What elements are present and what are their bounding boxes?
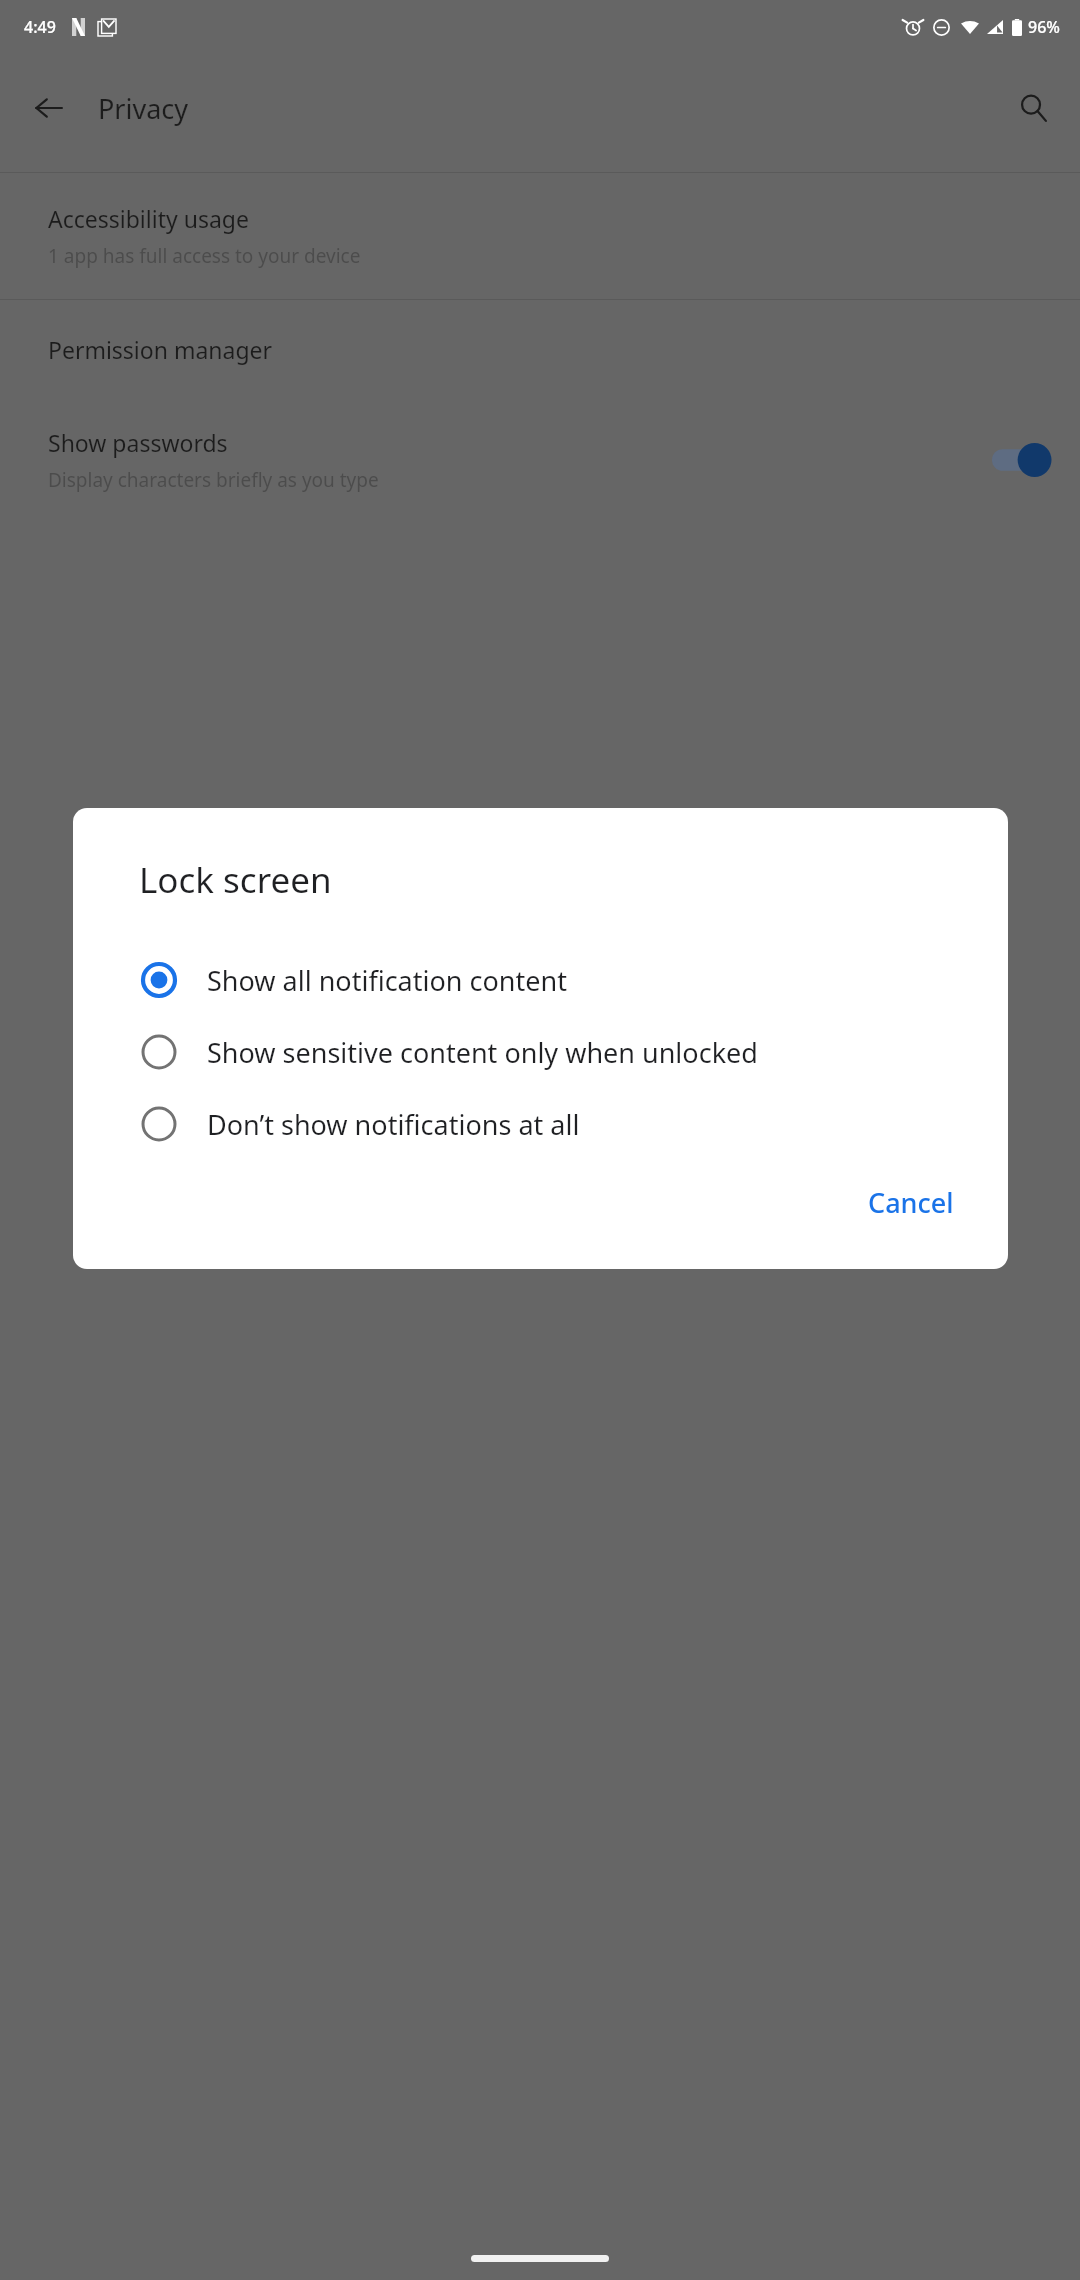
button[interactable]: Search (1002, 77, 1064, 139)
staticText: Display characters briefly as you type (48, 467, 379, 493)
staticText: Permission manager (48, 334, 273, 365)
staticText: Show all notification content (207, 962, 567, 999)
staticText: Show sensitive content only when unlocke… (207, 1034, 758, 1071)
staticText: Cancel (868, 1184, 954, 1221)
button[interactable]: Don’t show notifications at all (73, 1088, 1008, 1160)
button[interactable]: Show passwords (0, 399, 1080, 521)
button[interactable]: Show passwords (992, 442, 1052, 478)
button[interactable]: Show all notification content (73, 944, 1008, 1016)
staticText: Lock screen (139, 856, 332, 904)
staticText: 1 app has full access to your device (48, 243, 361, 269)
staticText: Accessibility usage (48, 203, 249, 234)
staticText: Show passwords (48, 427, 228, 458)
button[interactable]: Show sensitive content only when unlocke… (73, 1016, 1008, 1088)
button[interactable]: Accessibility usage (0, 173, 1080, 299)
staticText: Don’t show notifications at all (207, 1106, 580, 1143)
staticText: Privacy (98, 90, 189, 127)
staticText: 4:49 (24, 16, 56, 38)
button[interactable]: Permission manager (0, 300, 1080, 399)
staticText: 96% (1028, 16, 1060, 38)
button[interactable]: Back (18, 77, 80, 139)
button[interactable]: Cancel (850, 1170, 972, 1235)
